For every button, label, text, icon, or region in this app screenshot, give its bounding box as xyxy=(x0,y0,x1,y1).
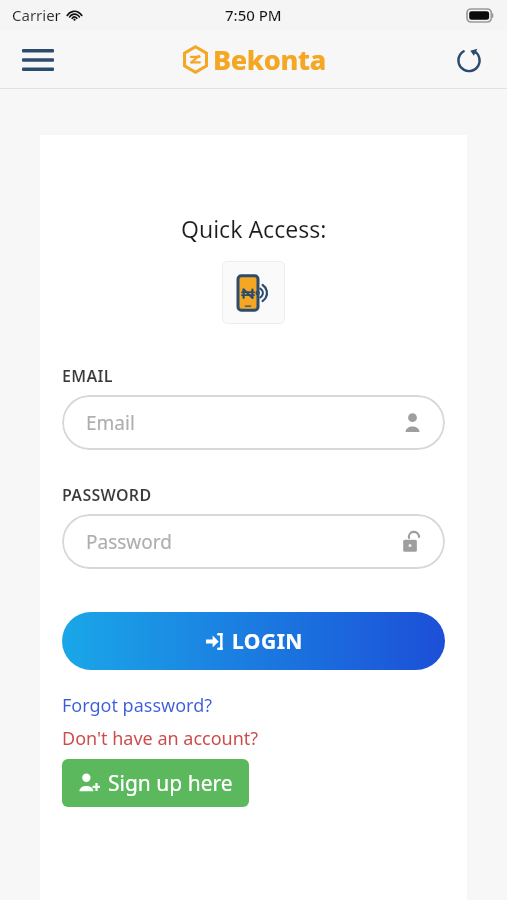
button[interactable]: Sign up here xyxy=(62,759,249,807)
button[interactable]: Email xyxy=(62,395,445,450)
staticText: Don't have an account? xyxy=(62,726,259,751)
staticText: Sign up here xyxy=(108,769,233,798)
button[interactable]: Bekonta xyxy=(182,41,326,78)
button[interactable]: Menu xyxy=(16,38,60,82)
staticText: LOGIN xyxy=(232,627,303,656)
staticText: Quick Access: xyxy=(181,213,327,244)
button[interactable]: Forgot password? xyxy=(62,693,213,718)
staticText: EMAIL xyxy=(62,365,113,387)
staticText: Bekonta xyxy=(213,41,326,78)
button[interactable]: Refresh xyxy=(447,38,491,82)
staticText: 7:50 PM xyxy=(225,5,282,25)
button[interactable]: Quick access payment xyxy=(222,261,285,324)
button[interactable]: Password xyxy=(62,514,445,569)
staticText: Email xyxy=(86,410,402,436)
staticText: Carrier xyxy=(12,5,61,25)
button[interactable]: LOGIN xyxy=(62,612,445,670)
staticText: PASSWORD xyxy=(62,484,152,506)
staticText: Password xyxy=(86,529,401,555)
